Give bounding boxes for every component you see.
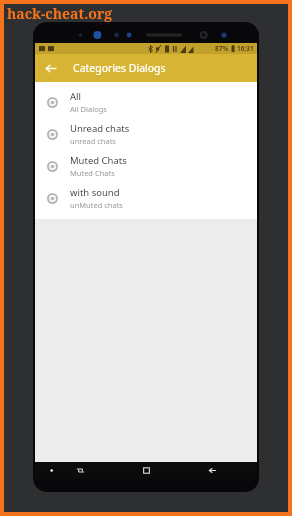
staticText: hack-cheat.org [7,4,113,23]
staticText: unMuted chats [70,200,123,210]
button[interactable]: with sound [35,182,257,214]
staticText: Muted Chats [70,168,115,178]
staticText: Muted Chats [70,154,127,167]
staticText: with sound [70,186,120,199]
staticText: 16:31 [237,44,254,53]
button[interactable]: Muted Chats [35,150,257,182]
staticText: unread chats [70,136,116,146]
button[interactable]: Back [40,58,60,78]
button[interactable]: All [35,86,257,118]
staticText: Categories Dialogs [73,61,166,75]
button[interactable]: Home [135,462,157,479]
staticText: All [70,90,81,103]
staticText: All Dialogs [70,104,107,114]
staticText: Unread chats [70,122,130,135]
button[interactable]: Recent apps [69,462,91,479]
button[interactable]: Unread chats [35,118,257,150]
button[interactable]: Back [201,462,223,479]
staticText: 87% [215,44,229,53]
